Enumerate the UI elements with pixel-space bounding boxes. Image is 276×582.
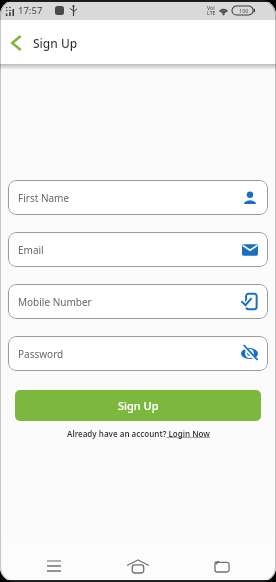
staticText: 17:57 (18, 4, 43, 17)
staticText: Already have an account? Login Now (67, 428, 210, 439)
button[interactable]: Already have an account? Login Now (0, 428, 276, 439)
button[interactable]: Mobile Number (8, 284, 268, 319)
button[interactable] (40, 552, 68, 580)
button[interactable] (4, 31, 28, 55)
staticText: Vol LTE (207, 5, 216, 16)
staticText: Email (18, 243, 44, 257)
staticText: Sign Up (118, 398, 159, 413)
staticText: 100 (239, 7, 249, 14)
button[interactable]: Sign Up (15, 390, 261, 421)
staticText: Password (18, 347, 64, 361)
button[interactable]: First Name (8, 180, 268, 215)
staticText: Sign Up (33, 35, 78, 51)
button[interactable]: Email (8, 232, 268, 267)
staticText: First Name (18, 191, 70, 205)
staticText: Mobile Number (18, 295, 92, 309)
button[interactable] (124, 552, 152, 580)
button[interactable]: Password (8, 336, 268, 371)
button[interactable] (208, 552, 236, 580)
